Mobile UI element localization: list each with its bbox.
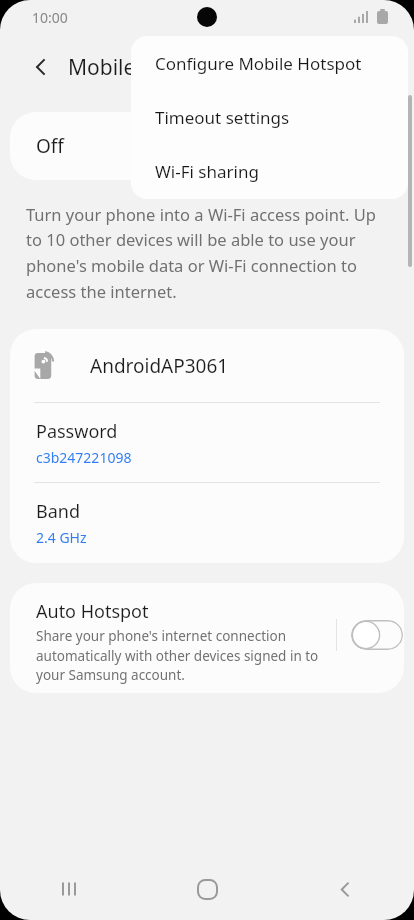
button[interactable]: AndroidAP3061 — [10, 329, 404, 402]
staticText: Timeout settings — [155, 106, 290, 129]
button[interactable]: Password — [10, 403, 404, 482]
button[interactable]: Band — [10, 483, 404, 563]
staticText: Share your phone's internet connection a… — [36, 627, 328, 684]
button[interactable]: Configure Mobile Hotspot — [131, 36, 408, 90]
button[interactable]: Wi-Fi sharing — [131, 144, 408, 198]
staticText: Configure Mobile Hotspot — [155, 52, 362, 75]
button[interactable]: Back — [276, 858, 414, 920]
staticText: Wi-Fi sharing — [155, 160, 259, 183]
button[interactable]: Recent apps — [0, 858, 138, 920]
staticText: c3b247221098 — [36, 448, 132, 467]
staticText: 10:00 — [32, 8, 68, 27]
staticText: Password — [36, 419, 118, 444]
staticText: Off — [36, 133, 64, 159]
staticText: AndroidAP3061 — [90, 353, 229, 379]
staticText: 2.4 GHz — [36, 528, 87, 547]
staticText: Mobile Hotspot — [68, 53, 220, 82]
staticText: Band — [36, 499, 80, 524]
button[interactable]: Auto Hotspot toggle, off — [351, 620, 403, 650]
button[interactable]: Timeout settings — [131, 90, 408, 144]
button[interactable]: Auto Hotspot — [10, 583, 404, 693]
staticText: Turn your phone into a Wi-Fi access poin… — [26, 203, 376, 303]
staticText: Auto Hotspot — [36, 599, 149, 624]
button[interactable]: Navigate up — [22, 48, 60, 86]
button[interactable]: Off — [10, 112, 404, 180]
button[interactable]: Home — [138, 858, 276, 920]
